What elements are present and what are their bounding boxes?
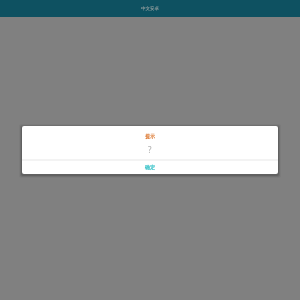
staticText: ?	[148, 144, 152, 155]
button[interactable]: 确定	[22, 161, 278, 174]
staticText: 确定	[145, 164, 155, 170]
button[interactable]: 中文安卓	[0, 0, 300, 17]
staticText: 中文安卓	[141, 6, 159, 12]
staticText: 提示	[145, 133, 155, 139]
